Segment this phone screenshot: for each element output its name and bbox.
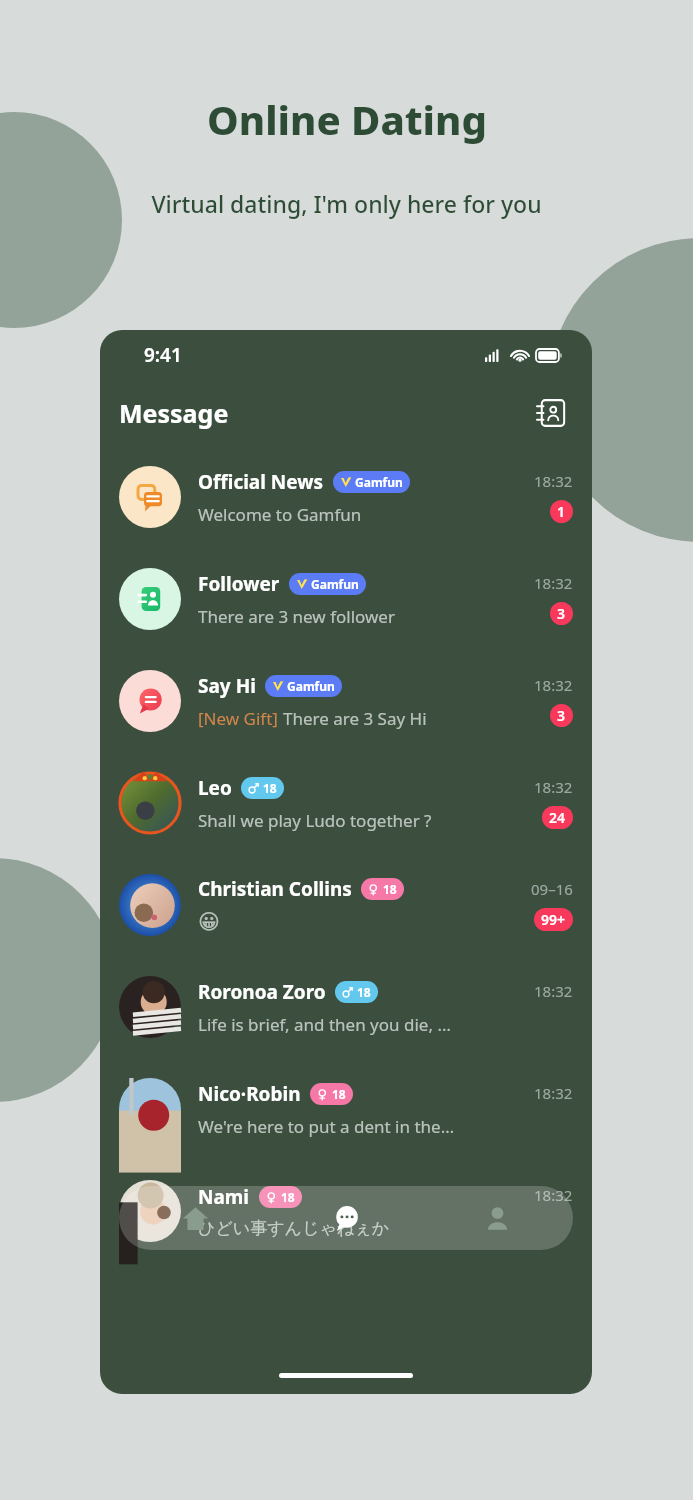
staticText: 18: [383, 881, 397, 897]
staticText: 3: [557, 604, 566, 623]
staticText: Message: [119, 396, 229, 430]
staticText: Gamfun: [287, 678, 335, 694]
staticText: 18: [332, 1086, 346, 1102]
staticText: 18:32: [534, 471, 573, 491]
button[interactable]: Follower: [100, 548, 592, 650]
staticText: Nico·Robin: [198, 1081, 301, 1107]
staticText: 18:32: [534, 1083, 573, 1103]
button[interactable]: Messages: [271, 1186, 422, 1250]
staticText: Shall we play Ludo together ?: [198, 809, 432, 832]
staticText: 😀: [198, 910, 220, 934]
staticText: There are 3 Say Hi: [283, 707, 427, 730]
button[interactable]: Roronoa Zoro: [100, 956, 592, 1058]
button[interactable]: Leo: [100, 752, 592, 854]
staticText: 9:41: [144, 342, 182, 368]
button[interactable]: Say Hi: [100, 650, 592, 752]
staticText: 18:32: [534, 981, 573, 1001]
staticText: 99+: [541, 910, 566, 929]
staticText: There are 3 new follower: [198, 605, 395, 628]
staticText: We're here to put a dent in the…: [198, 1115, 455, 1138]
staticText: Online Dating: [207, 92, 487, 146]
staticText: 18:32: [534, 573, 573, 593]
staticText: Official News: [198, 469, 324, 495]
staticText: 18:32: [534, 777, 573, 797]
button[interactable]: Christian Collins: [100, 854, 592, 956]
button[interactable]: Nico·Robin: [100, 1058, 592, 1160]
staticText: Christian Collins: [198, 876, 352, 902]
staticText: 1: [557, 502, 566, 521]
staticText: Welcome to Gamfun: [198, 503, 362, 526]
staticText: Virtual dating, I'm only here for you: [151, 188, 542, 219]
staticText: 18: [281, 1189, 295, 1205]
staticText: 09–16: [531, 879, 573, 899]
staticText: 18:32: [534, 1185, 573, 1205]
staticText: 18: [263, 780, 277, 796]
staticText: Follower: [198, 571, 280, 597]
staticText: 18: [357, 984, 371, 1000]
button[interactable]: Profile: [422, 1186, 573, 1250]
staticText: Life is brief, and then you die, …: [198, 1013, 451, 1036]
staticText: Roronoa Zoro: [198, 979, 326, 1005]
button[interactable]: Official News: [100, 446, 592, 548]
button[interactable]: Home: [119, 1186, 271, 1250]
staticText: Nami: [198, 1184, 250, 1210]
button[interactable]: Nami: [100, 1160, 592, 1262]
staticText: Say Hi: [198, 673, 256, 699]
staticText: 24: [549, 808, 566, 827]
staticText: Leo: [198, 775, 232, 801]
staticText: ひどい事すんじゃねぇか: [198, 1218, 389, 1239]
staticText: 18:32: [534, 675, 573, 695]
staticText: [New Gift]: [198, 707, 283, 730]
button[interactable]: Contacts: [534, 396, 568, 430]
staticText: Gamfun: [311, 576, 359, 592]
staticText: Gamfun: [355, 474, 403, 490]
staticText: 3: [557, 706, 566, 725]
